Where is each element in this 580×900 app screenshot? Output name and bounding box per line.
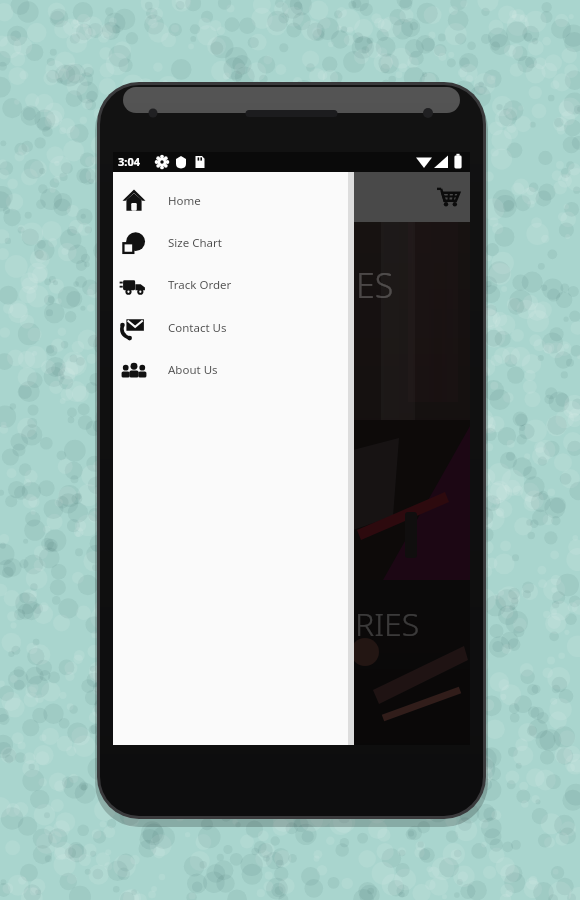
staticText: Contact Us bbox=[168, 320, 227, 336]
staticText: Home bbox=[168, 193, 201, 209]
staticText: RIES bbox=[355, 602, 420, 646]
staticText: ES bbox=[356, 262, 394, 308]
staticText: About Us bbox=[168, 362, 218, 378]
button[interactable]: Size Chart bbox=[113, 222, 354, 264]
button[interactable]: About Us bbox=[113, 349, 354, 391]
button[interactable]: Home bbox=[113, 180, 354, 222]
button[interactable]: Track Order bbox=[113, 264, 354, 306]
staticText: Track Order bbox=[168, 277, 232, 293]
button[interactable]: Shopping cart bbox=[428, 177, 468, 217]
staticText: Size Chart bbox=[168, 235, 222, 251]
staticText: 3:04 bbox=[118, 154, 140, 169]
button[interactable]: Contact Us bbox=[113, 307, 354, 349]
